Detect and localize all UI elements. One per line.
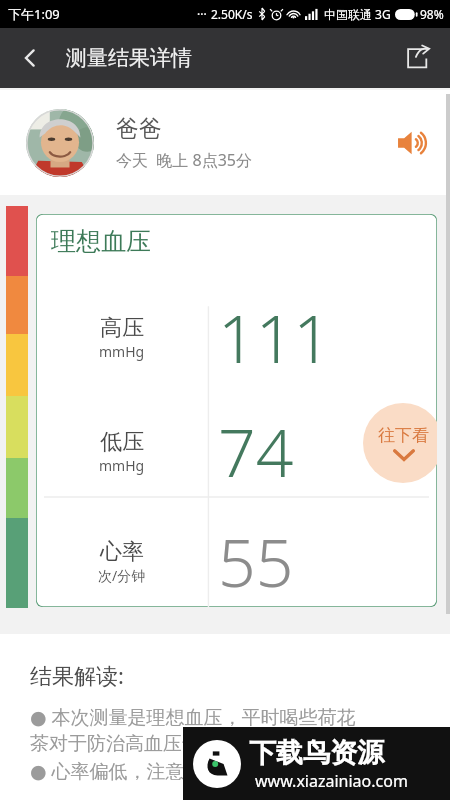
staticText: 理想血压 xyxy=(51,226,151,257)
button[interactable]: 往下看 xyxy=(363,403,437,483)
staticText: 测量结果详情 xyxy=(66,45,192,71)
staticText: 低压 xyxy=(100,428,144,456)
staticText: mmHg xyxy=(99,342,145,361)
staticText: 下午1:09 xyxy=(8,5,60,23)
staticText: 2.50K/s xyxy=(211,6,253,22)
staticText: 下载鸟资源 xyxy=(249,736,384,770)
staticText: ● 本次测量是理想血压，平时喝些荷花 茶对于防治高血压也很有效。 ● 心率偏低，… xyxy=(30,704,356,783)
staticText: 结果解读: xyxy=(30,660,124,690)
staticText: 74 xyxy=(218,406,294,496)
staticText: 中国联通 3G xyxy=(324,6,391,22)
staticText: 高压 xyxy=(100,314,144,342)
staticText: 心率 xyxy=(100,538,144,566)
staticText: 今天 晚上 8点35分 xyxy=(116,149,252,171)
staticText: www.xiazainiao.com xyxy=(255,770,408,792)
button[interactable]: Share xyxy=(394,34,442,82)
button[interactable]: Play sound xyxy=(390,120,436,166)
staticText: mmHg xyxy=(99,456,145,475)
staticText: 55 xyxy=(218,516,294,606)
staticText: 爸爸 xyxy=(116,114,162,143)
staticText: 往下看 xyxy=(378,425,429,446)
staticText: 111 xyxy=(218,292,332,382)
button[interactable]: Back xyxy=(6,34,54,82)
staticText: 98% xyxy=(420,6,444,22)
button[interactable]: 理想血压 xyxy=(36,214,437,607)
staticText: 次/分钟 xyxy=(98,566,146,585)
staticText: ··· xyxy=(197,6,207,22)
